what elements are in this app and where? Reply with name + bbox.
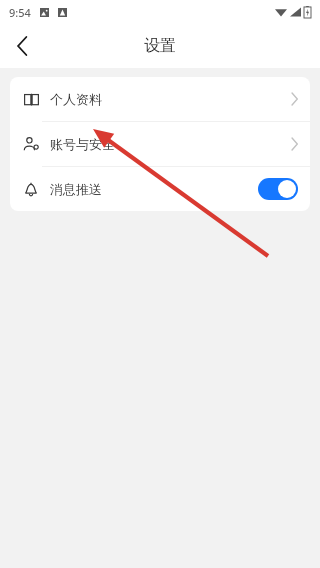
- staticText: 账号与安全: [50, 136, 115, 152]
- button[interactable]: Back: [0, 24, 44, 68]
- button[interactable]: 账号与安全: [10, 122, 310, 166]
- staticText: 设置: [144, 36, 176, 56]
- button[interactable]: 消息推送 开关: [258, 178, 298, 200]
- staticText: 消息推送: [50, 181, 102, 197]
- button[interactable]: 个人资料: [10, 77, 310, 121]
- staticText: 个人资料: [50, 91, 102, 107]
- staticText: 9:54: [9, 5, 31, 20]
- button[interactable]: 消息推送: [10, 167, 310, 211]
